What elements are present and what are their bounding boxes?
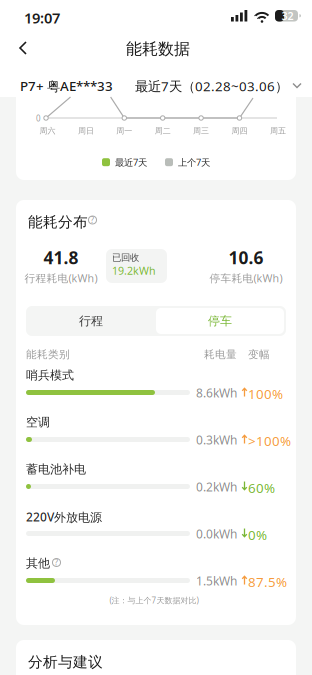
staticText: 周二: [155, 126, 171, 136]
button[interactable]: 最近7天（02.28~03.06）: [102, 76, 302, 96]
staticText: 220V外放电源: [26, 509, 102, 525]
staticText: 行程耗电(kWh): [24, 271, 97, 285]
staticText: 0%: [248, 526, 267, 544]
staticText: 100%: [248, 385, 283, 403]
staticText: 哨兵模式: [26, 368, 74, 383]
staticText: 1.5kWh: [196, 573, 237, 589]
staticText: >100%: [248, 432, 291, 450]
staticText: 8.6kWh: [196, 385, 237, 401]
staticText: 60%: [248, 479, 275, 497]
button[interactable]: 能耗分布说明: [88, 215, 97, 224]
staticText: 能耗类别: [26, 348, 70, 361]
staticText: 周一: [116, 126, 132, 136]
staticText: 能耗分布: [28, 213, 88, 231]
staticText: 能耗数据: [126, 39, 190, 59]
staticText: 其他: [26, 556, 50, 571]
button[interactable]: 行程: [26, 306, 156, 336]
staticText: 蓄电池补电: [26, 462, 86, 477]
staticText: 最近7天: [115, 156, 147, 168]
staticText: 停车: [208, 314, 232, 328]
staticText: 停车耗电(kWh): [209, 271, 282, 285]
button[interactable]: 其他说明: [52, 558, 61, 567]
staticText: 上个7天: [178, 156, 210, 168]
button[interactable]: 返回: [6, 34, 40, 62]
staticText: 10.6: [228, 246, 263, 269]
staticText: 0: [36, 113, 41, 124]
staticText: 41.8: [43, 246, 78, 269]
button[interactable]: 停车: [156, 308, 284, 334]
staticText: 周三: [193, 126, 209, 136]
staticText: 19:07: [24, 8, 60, 27]
staticText: 87.5%: [248, 573, 287, 591]
staticText: ?: [90, 215, 94, 225]
staticText: 32: [281, 9, 293, 23]
staticText: 周六: [39, 126, 55, 136]
staticText: 0.2kWh: [196, 479, 237, 495]
staticText: 耗电量: [204, 348, 237, 361]
staticText: (注：与上个7天数据对比): [109, 595, 198, 606]
staticText: 行程: [79, 314, 103, 328]
staticText: 分析与建议: [28, 653, 103, 671]
staticText: 空调: [26, 415, 50, 430]
staticText: 变幅: [248, 348, 270, 361]
staticText: 最近7天（02.28~03.06）: [135, 77, 288, 95]
staticText: 周日: [78, 126, 94, 136]
staticText: 周五: [270, 126, 286, 136]
staticText: P7+ 粤AE***33: [20, 77, 113, 95]
staticText: 0.3kWh: [196, 432, 237, 448]
staticText: 周四: [231, 126, 247, 136]
staticText: ?: [54, 557, 58, 568]
staticText: 19.2kWh: [112, 263, 156, 278]
staticText: 0.0kWh: [196, 526, 237, 542]
staticText: 已回收: [112, 252, 139, 263]
